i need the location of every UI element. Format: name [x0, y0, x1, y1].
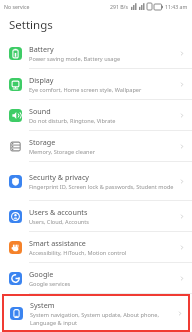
staticText: Users, Cloud, Accounts [29, 218, 90, 226]
staticText: 11:43 am [165, 3, 188, 10]
staticText: Accessibility, HiTouch, Motion control [29, 249, 127, 257]
staticText: Google services [29, 280, 71, 288]
button[interactable]: Sound [0, 100, 192, 130]
button[interactable]: Users & accounts [0, 201, 192, 231]
staticText: Sound [29, 106, 51, 116]
button[interactable]: Storage [0, 131, 192, 161]
staticText: 291 B/s [110, 3, 129, 10]
button[interactable]: Display [0, 69, 192, 99]
staticText: System navigation, System update, About … [30, 311, 173, 326]
button[interactable]: Google [0, 263, 192, 293]
staticText: Storage [29, 137, 56, 147]
staticText: Settings [9, 17, 53, 33]
button[interactable]: Battery [0, 38, 192, 68]
button[interactable]: Security & privacy [0, 162, 192, 200]
staticText: Smart assistance [29, 238, 86, 248]
staticText: Security & privacy [29, 172, 90, 182]
staticText: Battery [29, 44, 54, 54]
staticText: Fingerprint ID, Screen lock & passwords,… [29, 183, 174, 191]
button[interactable]: System [2, 294, 190, 332]
staticText: No service [4, 3, 30, 10]
staticText: Eye comfort, Home screen style, Wallpape… [29, 86, 142, 94]
staticText: Memory, Storage cleaner [29, 148, 95, 156]
staticText: Display [29, 75, 54, 85]
button[interactable]: Smart assistance [0, 232, 192, 262]
staticText: System [30, 300, 55, 310]
staticText: Do not disturb, Ringtone, Vibrate [29, 117, 116, 125]
staticText: Power saving mode, Battery usage [29, 55, 121, 63]
staticText: Users & accounts [29, 207, 88, 217]
staticText: Google [29, 269, 54, 279]
